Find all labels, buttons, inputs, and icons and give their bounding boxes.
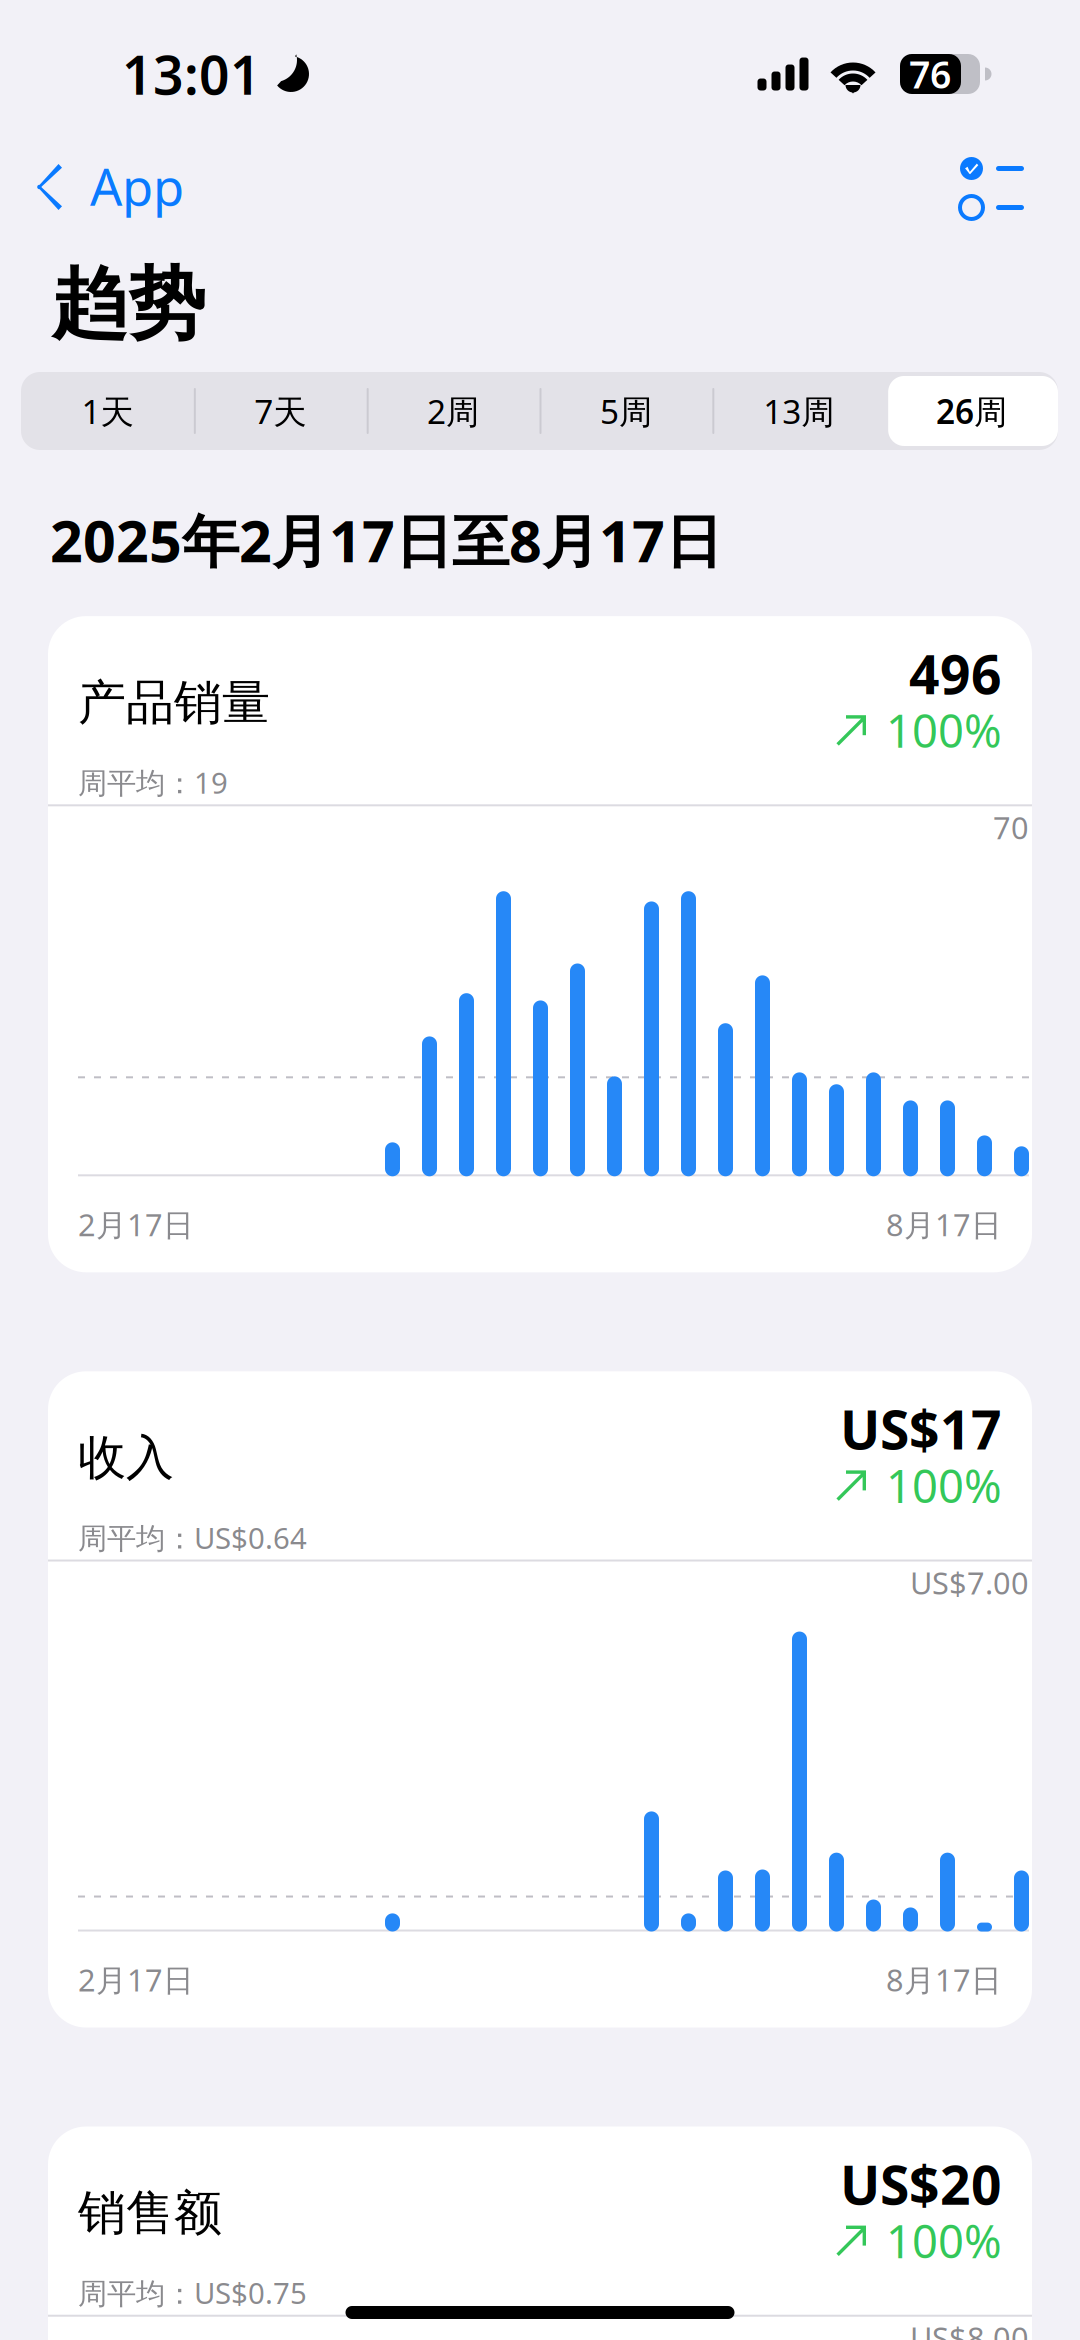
staticText: 收入 <box>78 1428 174 1487</box>
staticText: 7天 <box>254 389 306 433</box>
button[interactable]: 7天 <box>194 372 367 450</box>
staticText: 100% <box>886 1455 1002 1515</box>
staticText: 8月17日 <box>886 1959 1002 2000</box>
staticText: 周平均：US$0.64 <box>78 1518 307 1557</box>
staticText: 2月17日 <box>78 1204 194 1245</box>
staticText: 13周 <box>763 389 834 433</box>
button[interactable]: Filter list <box>962 142 1080 234</box>
staticText: 周平均：19 <box>78 763 228 802</box>
staticText: US$8.00 <box>910 2317 1029 2340</box>
staticText: 5周 <box>600 389 652 433</box>
staticText: 产品销量 <box>78 673 270 732</box>
staticText: App <box>90 152 184 220</box>
staticText: US$17 <box>840 1393 1002 1464</box>
staticText: 趋势 <box>51 257 205 352</box>
staticText: 2月17日 <box>78 1959 194 2000</box>
button[interactable]: App <box>0 142 202 234</box>
staticText: 2025年2月17日至8月17日 <box>50 502 722 578</box>
staticText: 2周 <box>427 389 479 433</box>
staticText: 100% <box>886 2210 1002 2271</box>
button[interactable]: 2周 <box>367 372 539 450</box>
staticText: 26周 <box>936 389 1007 433</box>
staticText: US$7.00 <box>910 1562 1029 1603</box>
staticText: 496 <box>909 638 1002 709</box>
staticText: 1天 <box>81 389 133 433</box>
staticText: 76 <box>909 49 951 99</box>
button[interactable]: 1天 <box>21 372 194 450</box>
button[interactable]: 13周 <box>712 372 885 450</box>
staticText: 13:01 <box>122 39 261 109</box>
staticText: US$20 <box>840 2148 1002 2219</box>
button[interactable]: 26周 <box>885 372 1058 450</box>
staticText: 100% <box>886 700 1002 760</box>
staticText: 8月17日 <box>886 1204 1002 1245</box>
staticText: 周平均：US$0.75 <box>78 2273 307 2312</box>
staticText: 70 <box>993 807 1029 848</box>
button[interactable]: 5周 <box>539 372 712 450</box>
staticText: 销售额 <box>78 2184 222 2243</box>
